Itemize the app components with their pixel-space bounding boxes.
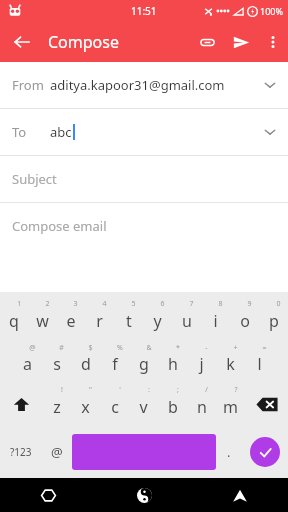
button[interactable]: Enter — [250, 437, 280, 467]
button[interactable]: ' — [100, 382, 129, 426]
button[interactable]: ? — [216, 382, 245, 426]
button[interactable]: 2 — [28, 296, 56, 340]
button[interactable]: 9 — [230, 296, 259, 340]
staticText: ? — [234, 385, 238, 395]
staticText: Compose email — [12, 217, 107, 235]
staticText: 7 — [189, 299, 194, 309]
button[interactable]: + — [216, 340, 245, 382]
staticText: k — [226, 353, 235, 375]
staticText: . — [227, 443, 231, 461]
staticText: 2 — [45, 299, 50, 309]
button[interactable]: 6 — [143, 296, 172, 340]
button[interactable]: ?123 — [0, 426, 42, 478]
button[interactable]: / — [187, 382, 216, 426]
button[interactable]: " — [71, 382, 100, 426]
staticText: - — [205, 343, 208, 353]
staticText: @ — [29, 343, 36, 353]
staticText: $ — [88, 343, 93, 353]
button[interactable]: 5 — [114, 296, 143, 340]
button[interactable]: Compose email — [0, 203, 288, 249]
button[interactable]: & — [129, 340, 158, 382]
staticText: h — [168, 353, 178, 375]
button[interactable]: @ — [42, 426, 72, 478]
staticText: 3 — [73, 299, 78, 309]
staticText: w — [36, 310, 49, 332]
staticText: % — [117, 343, 123, 353]
staticText: + — [233, 343, 238, 353]
button[interactable]: $ — [71, 340, 100, 382]
button[interactable]: ! — [42, 382, 71, 426]
staticText: ; — [177, 385, 179, 395]
button[interactable]: * — [158, 340, 187, 382]
staticText: " — [89, 385, 92, 395]
button[interactable]: From — [0, 62, 288, 108]
staticText: y — [153, 310, 162, 332]
button[interactable]: Attach file — [190, 25, 224, 59]
staticText: @ — [51, 443, 63, 461]
staticText: ! — [61, 385, 63, 395]
button[interactable]: 1 — [0, 296, 28, 340]
staticText: v — [139, 396, 148, 418]
button[interactable]: Send — [224, 25, 258, 59]
staticText: 6 — [160, 299, 165, 309]
staticText: 9 — [247, 299, 252, 309]
button[interactable]: Space — [72, 434, 216, 470]
button[interactable]: 4 — [85, 296, 114, 340]
button[interactable]: Recents — [0, 478, 96, 512]
button[interactable]: - — [187, 340, 216, 382]
staticText: g — [139, 353, 149, 375]
staticText: p — [269, 310, 279, 332]
staticText: aditya.kapoor31@gmail.com — [50, 76, 225, 94]
button[interactable]: . — [216, 426, 242, 478]
staticText: 0 — [276, 299, 281, 309]
staticText: j — [199, 353, 204, 375]
staticText: abc — [50, 123, 72, 141]
button[interactable]: 8 — [201, 296, 230, 340]
button[interactable]: More options — [258, 27, 288, 57]
button[interactable]: : — [129, 382, 158, 426]
button[interactable]: 7 — [172, 296, 201, 340]
button[interactable]: Subject — [0, 156, 288, 202]
staticText: = — [262, 343, 267, 353]
button[interactable]: 3 — [56, 296, 85, 340]
staticText: t — [126, 310, 132, 332]
staticText: 1 — [17, 299, 22, 309]
button[interactable]: % — [100, 340, 129, 382]
staticText: Compose — [48, 31, 119, 53]
staticText: : — [148, 385, 150, 395]
staticText: r — [96, 310, 103, 332]
button[interactable]: # — [42, 340, 71, 382]
staticText: q — [9, 310, 19, 332]
staticText: 5 — [131, 299, 136, 309]
button[interactable]: = — [245, 340, 274, 382]
staticText: i — [213, 310, 218, 332]
button[interactable]: Shift — [0, 382, 42, 426]
staticText: To — [12, 123, 27, 141]
staticText: ' — [119, 385, 121, 395]
staticText: e — [66, 310, 76, 332]
staticText: f — [112, 353, 118, 375]
staticText: l — [257, 353, 262, 375]
staticText: u — [182, 310, 192, 332]
staticText: b — [168, 396, 178, 418]
staticText: 100% — [260, 5, 283, 17]
button[interactable]: To — [0, 109, 288, 155]
staticText: # — [59, 343, 64, 353]
button[interactable]: ; — [158, 382, 187, 426]
staticText: ?123 — [10, 445, 32, 459]
staticText: / — [205, 385, 208, 395]
button[interactable]: 0 — [259, 296, 288, 340]
staticText: x — [81, 396, 90, 418]
button[interactable]: Back — [192, 478, 288, 512]
staticText: a — [23, 353, 32, 375]
button[interactable]: Back — [4, 24, 40, 60]
staticText: Subject — [12, 170, 57, 188]
button[interactable]: @ — [13, 340, 42, 382]
staticText: * — [176, 343, 180, 353]
staticText: 8 — [218, 299, 223, 309]
button[interactable]: Home — [96, 478, 192, 512]
staticText: 4 — [102, 299, 107, 309]
staticText: From — [12, 76, 44, 94]
button[interactable]: Backspace — [245, 382, 288, 426]
staticText: d — [81, 353, 91, 375]
